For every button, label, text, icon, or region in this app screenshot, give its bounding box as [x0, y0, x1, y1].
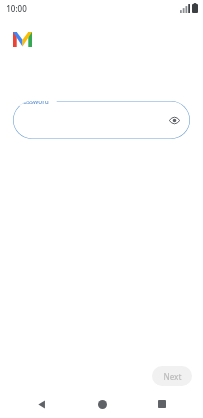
button[interactable]: Home [82, 390, 122, 418]
button[interactable]: Password [13, 101, 190, 139]
button[interactable]: Recent apps [142, 390, 182, 418]
button[interactable]: Back [21, 390, 61, 418]
staticText: Next [163, 371, 182, 382]
staticText: 10:00 [6, 3, 27, 14]
staticText: Password [19, 101, 49, 106]
button[interactable]: Next [152, 366, 192, 386]
button[interactable]: Show password [166, 112, 182, 128]
